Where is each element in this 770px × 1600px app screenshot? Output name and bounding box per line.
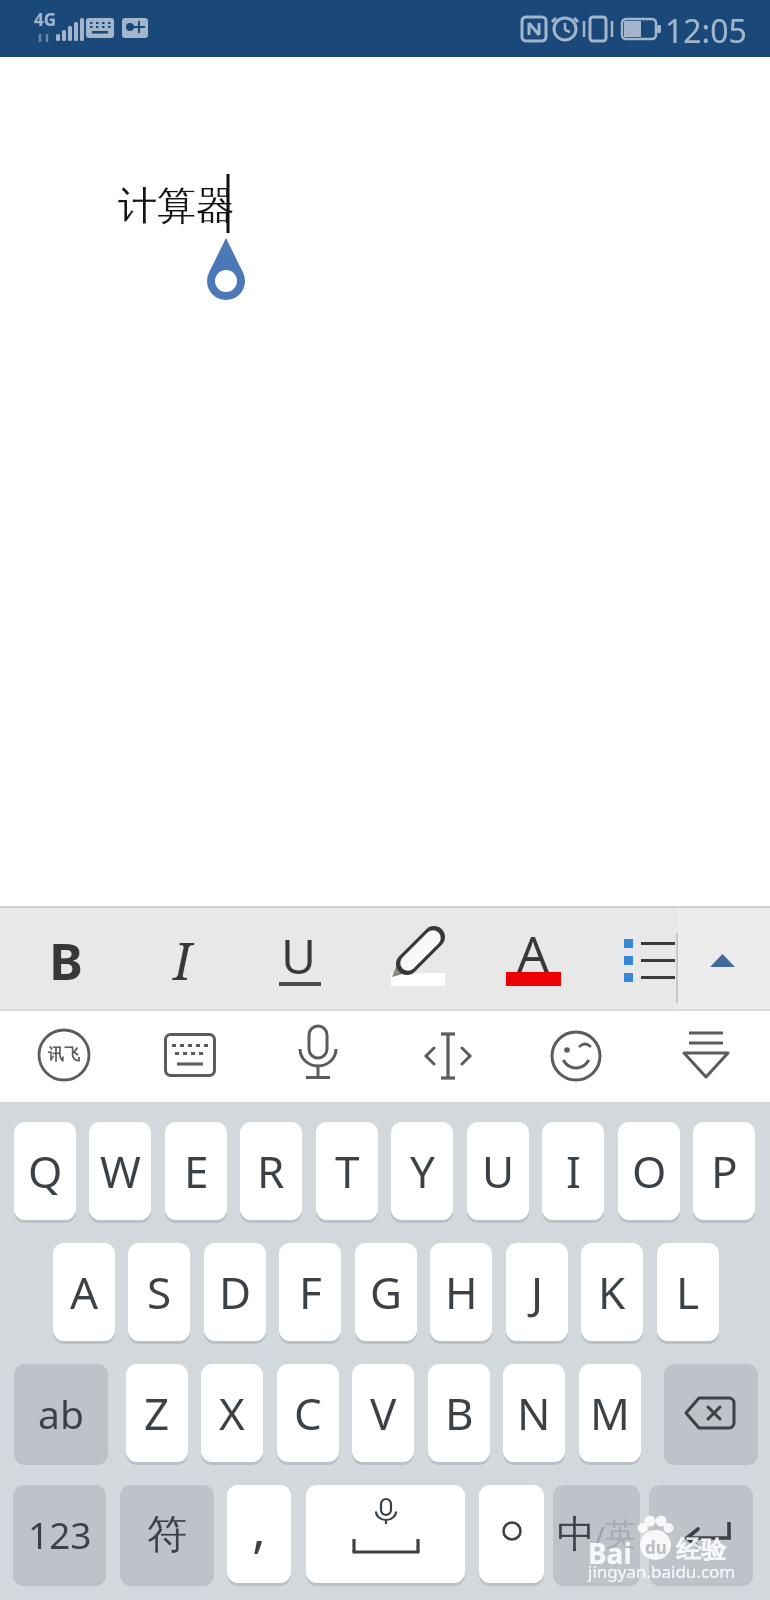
- staticText: V: [370, 1383, 397, 1443]
- staticText: du: [645, 1536, 667, 1559]
- staticText: X: [219, 1383, 245, 1443]
- staticText: ,: [252, 1491, 266, 1562]
- staticText: B: [445, 1383, 474, 1443]
- button[interactable]: [700, 936, 746, 982]
- button[interactable]: I: [542, 1122, 604, 1220]
- button[interactable]: M: [579, 1364, 641, 1462]
- button[interactable]: [160, 1029, 220, 1081]
- staticText: Z: [144, 1383, 170, 1443]
- button[interactable]: [649, 1485, 753, 1583]
- button[interactable]: 中: [553, 1485, 640, 1583]
- button[interactable]: T: [316, 1122, 378, 1220]
- staticText: D: [219, 1262, 252, 1322]
- button[interactable]: Z: [126, 1364, 188, 1462]
- staticText: J: [531, 1262, 544, 1322]
- button[interactable]: B: [36, 921, 96, 997]
- button[interactable]: S: [128, 1243, 190, 1341]
- staticText: F: [299, 1262, 322, 1322]
- button[interactable]: V: [352, 1364, 414, 1462]
- staticText: Y: [410, 1141, 435, 1201]
- staticText: U: [281, 923, 317, 988]
- button[interactable]: K: [581, 1243, 643, 1341]
- button[interactable]: A: [53, 1243, 115, 1341]
- button[interactable]: C: [277, 1364, 339, 1462]
- staticText: U: [482, 1141, 515, 1201]
- button[interactable]: 计算器: [104, 175, 248, 235]
- staticText: 12:05: [665, 9, 747, 49]
- staticText: I: [566, 1141, 581, 1201]
- button[interactable]: Y: [391, 1122, 453, 1220]
- button[interactable]: 讯飞: [38, 1029, 90, 1081]
- button[interactable]: [664, 1364, 758, 1462]
- staticText: N: [517, 1383, 551, 1443]
- staticText: A: [70, 1262, 99, 1322]
- button[interactable]: [292, 1023, 344, 1089]
- button[interactable]: ab: [14, 1364, 108, 1462]
- staticText: jingyan.baidu.com: [588, 1560, 736, 1583]
- staticText: K: [598, 1262, 626, 1322]
- staticText: 讯飞: [48, 1045, 80, 1065]
- button[interactable]: G: [355, 1243, 417, 1341]
- staticText: E: [184, 1141, 209, 1201]
- staticText: G: [370, 1262, 403, 1322]
- staticText: C: [294, 1383, 322, 1443]
- button[interactable]: D: [204, 1243, 266, 1341]
- button[interactable]: O: [618, 1122, 680, 1220]
- staticText: H: [445, 1262, 478, 1322]
- button[interactable]: N: [503, 1364, 565, 1462]
- button[interactable]: F: [279, 1243, 341, 1341]
- staticText: P: [711, 1141, 738, 1201]
- staticText: ab: [38, 1387, 84, 1440]
- staticText: 经验: [676, 1534, 726, 1565]
- button[interactable]: H: [430, 1243, 492, 1341]
- button[interactable]: [618, 920, 684, 996]
- staticText: 4G: [34, 8, 57, 31]
- button[interactable]: R: [240, 1122, 302, 1220]
- staticText: 计算器: [118, 181, 235, 230]
- button[interactable]: ,: [227, 1485, 291, 1583]
- button[interactable]: U: [467, 1122, 529, 1220]
- staticText: M: [590, 1383, 630, 1443]
- button[interactable]: I: [152, 921, 212, 997]
- staticText: T: [335, 1141, 360, 1201]
- staticText: L: [676, 1262, 700, 1322]
- staticText: 符: [147, 1509, 187, 1559]
- staticText: A: [517, 919, 549, 987]
- button[interactable]: [306, 1485, 465, 1583]
- button[interactable]: A: [503, 918, 563, 988]
- button[interactable]: J: [506, 1243, 568, 1341]
- button[interactable]: 符: [120, 1485, 214, 1583]
- staticText: R: [257, 1141, 285, 1201]
- button[interactable]: 123: [13, 1485, 106, 1583]
- staticText: O: [632, 1141, 667, 1201]
- staticText: Q: [28, 1141, 63, 1201]
- staticText: /: [595, 1517, 605, 1552]
- staticText: S: [147, 1262, 172, 1322]
- staticText: I: [173, 925, 192, 994]
- button[interactable]: [678, 1027, 734, 1085]
- button[interactable]: U: [268, 917, 330, 993]
- staticText: 123: [28, 1509, 92, 1559]
- button[interactable]: X: [201, 1364, 263, 1462]
- button[interactable]: E: [165, 1122, 227, 1220]
- button[interactable]: Q: [14, 1122, 76, 1220]
- button[interactable]: L: [657, 1243, 719, 1341]
- button[interactable]: B: [428, 1364, 490, 1462]
- button[interactable]: [420, 1027, 476, 1085]
- staticText: 中: [557, 1510, 595, 1558]
- staticText: Bai: [588, 1534, 632, 1572]
- staticText: B: [49, 925, 83, 994]
- staticText: 英: [605, 1515, 636, 1554]
- button[interactable]: W: [89, 1122, 151, 1220]
- staticText: W: [100, 1141, 141, 1201]
- button[interactable]: P: [693, 1122, 755, 1220]
- button[interactable]: [385, 920, 451, 996]
- button[interactable]: [479, 1485, 544, 1583]
- button[interactable]: [548, 1027, 606, 1085]
